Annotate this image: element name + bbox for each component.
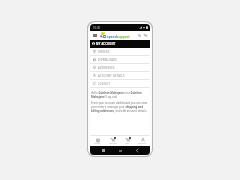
staticText: Account [138, 142, 147, 145]
staticText: 10:30 [93, 26, 101, 30]
staticText: ADDRESSES [98, 66, 115, 69]
staticText: DOWNLOADS [98, 58, 117, 61]
staticText: Cart [125, 142, 130, 145]
staticText: Home [94, 142, 101, 145]
staticText: Wishlist [109, 142, 117, 145]
staticText: MY ACCOUNT [96, 42, 116, 45]
staticText: ORDERS [98, 50, 110, 53]
button[interactable]: Home [90, 136, 105, 146]
button[interactable]: Menu [92, 33, 97, 38]
button[interactable]: Back [134, 148, 139, 153]
button[interactable]: Home [118, 148, 123, 153]
button[interactable]: Recent apps [101, 148, 106, 153]
button[interactable]: Cart [143, 33, 148, 38]
button[interactable]: Wishlist [105, 136, 120, 146]
staticText: From your account dashboard you can view… [91, 101, 150, 113]
button[interactable]: LOGOUT [90, 80, 150, 88]
button[interactable]: ADDRESSES [90, 64, 150, 72]
staticText: Hello Gulshan Mahajane (not Gulshan Maha… [91, 91, 150, 99]
staticText: speedsupport [107, 34, 130, 38]
button[interactable]: Cart [120, 136, 135, 146]
button[interactable]: Account [135, 136, 150, 146]
staticText: ACCOUNT DETAILS [98, 74, 125, 77]
button[interactable]: ACCOUNT DETAILS [90, 72, 150, 80]
button[interactable]: ORDERS [90, 48, 150, 56]
button[interactable]: DOWNLOADS [90, 56, 150, 64]
button[interactable]: Search [137, 33, 142, 38]
staticText: LOGOUT [98, 82, 111, 85]
